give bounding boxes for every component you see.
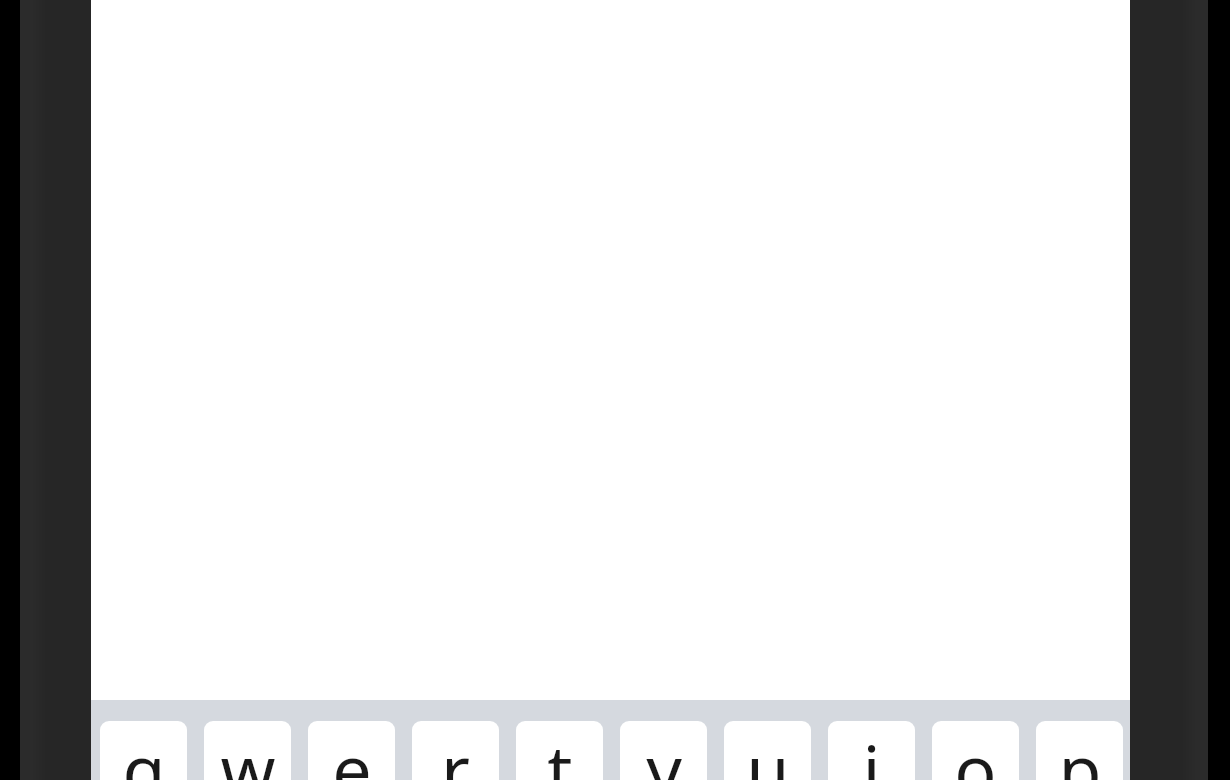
staticText: r: [441, 721, 470, 780]
button[interactable]: o: [932, 721, 1019, 780]
staticText: i: [862, 721, 881, 780]
staticText: y: [646, 721, 682, 780]
button[interactable]: w: [204, 721, 291, 780]
button[interactable]: q: [100, 721, 187, 780]
staticText: e: [332, 721, 372, 780]
staticText: t: [547, 721, 573, 780]
staticText: q: [122, 721, 166, 780]
button[interactable]: t: [516, 721, 603, 780]
staticText: o: [954, 721, 997, 780]
button[interactable]: e: [308, 721, 395, 780]
button[interactable]: y: [620, 721, 707, 780]
staticText: w: [220, 721, 276, 780]
staticText: p: [1058, 721, 1102, 780]
button[interactable]: u: [724, 721, 811, 780]
button[interactable]: p: [1036, 721, 1123, 780]
button[interactable]: r: [412, 721, 499, 780]
button[interactable]: i: [828, 721, 915, 780]
staticText: u: [746, 721, 790, 780]
